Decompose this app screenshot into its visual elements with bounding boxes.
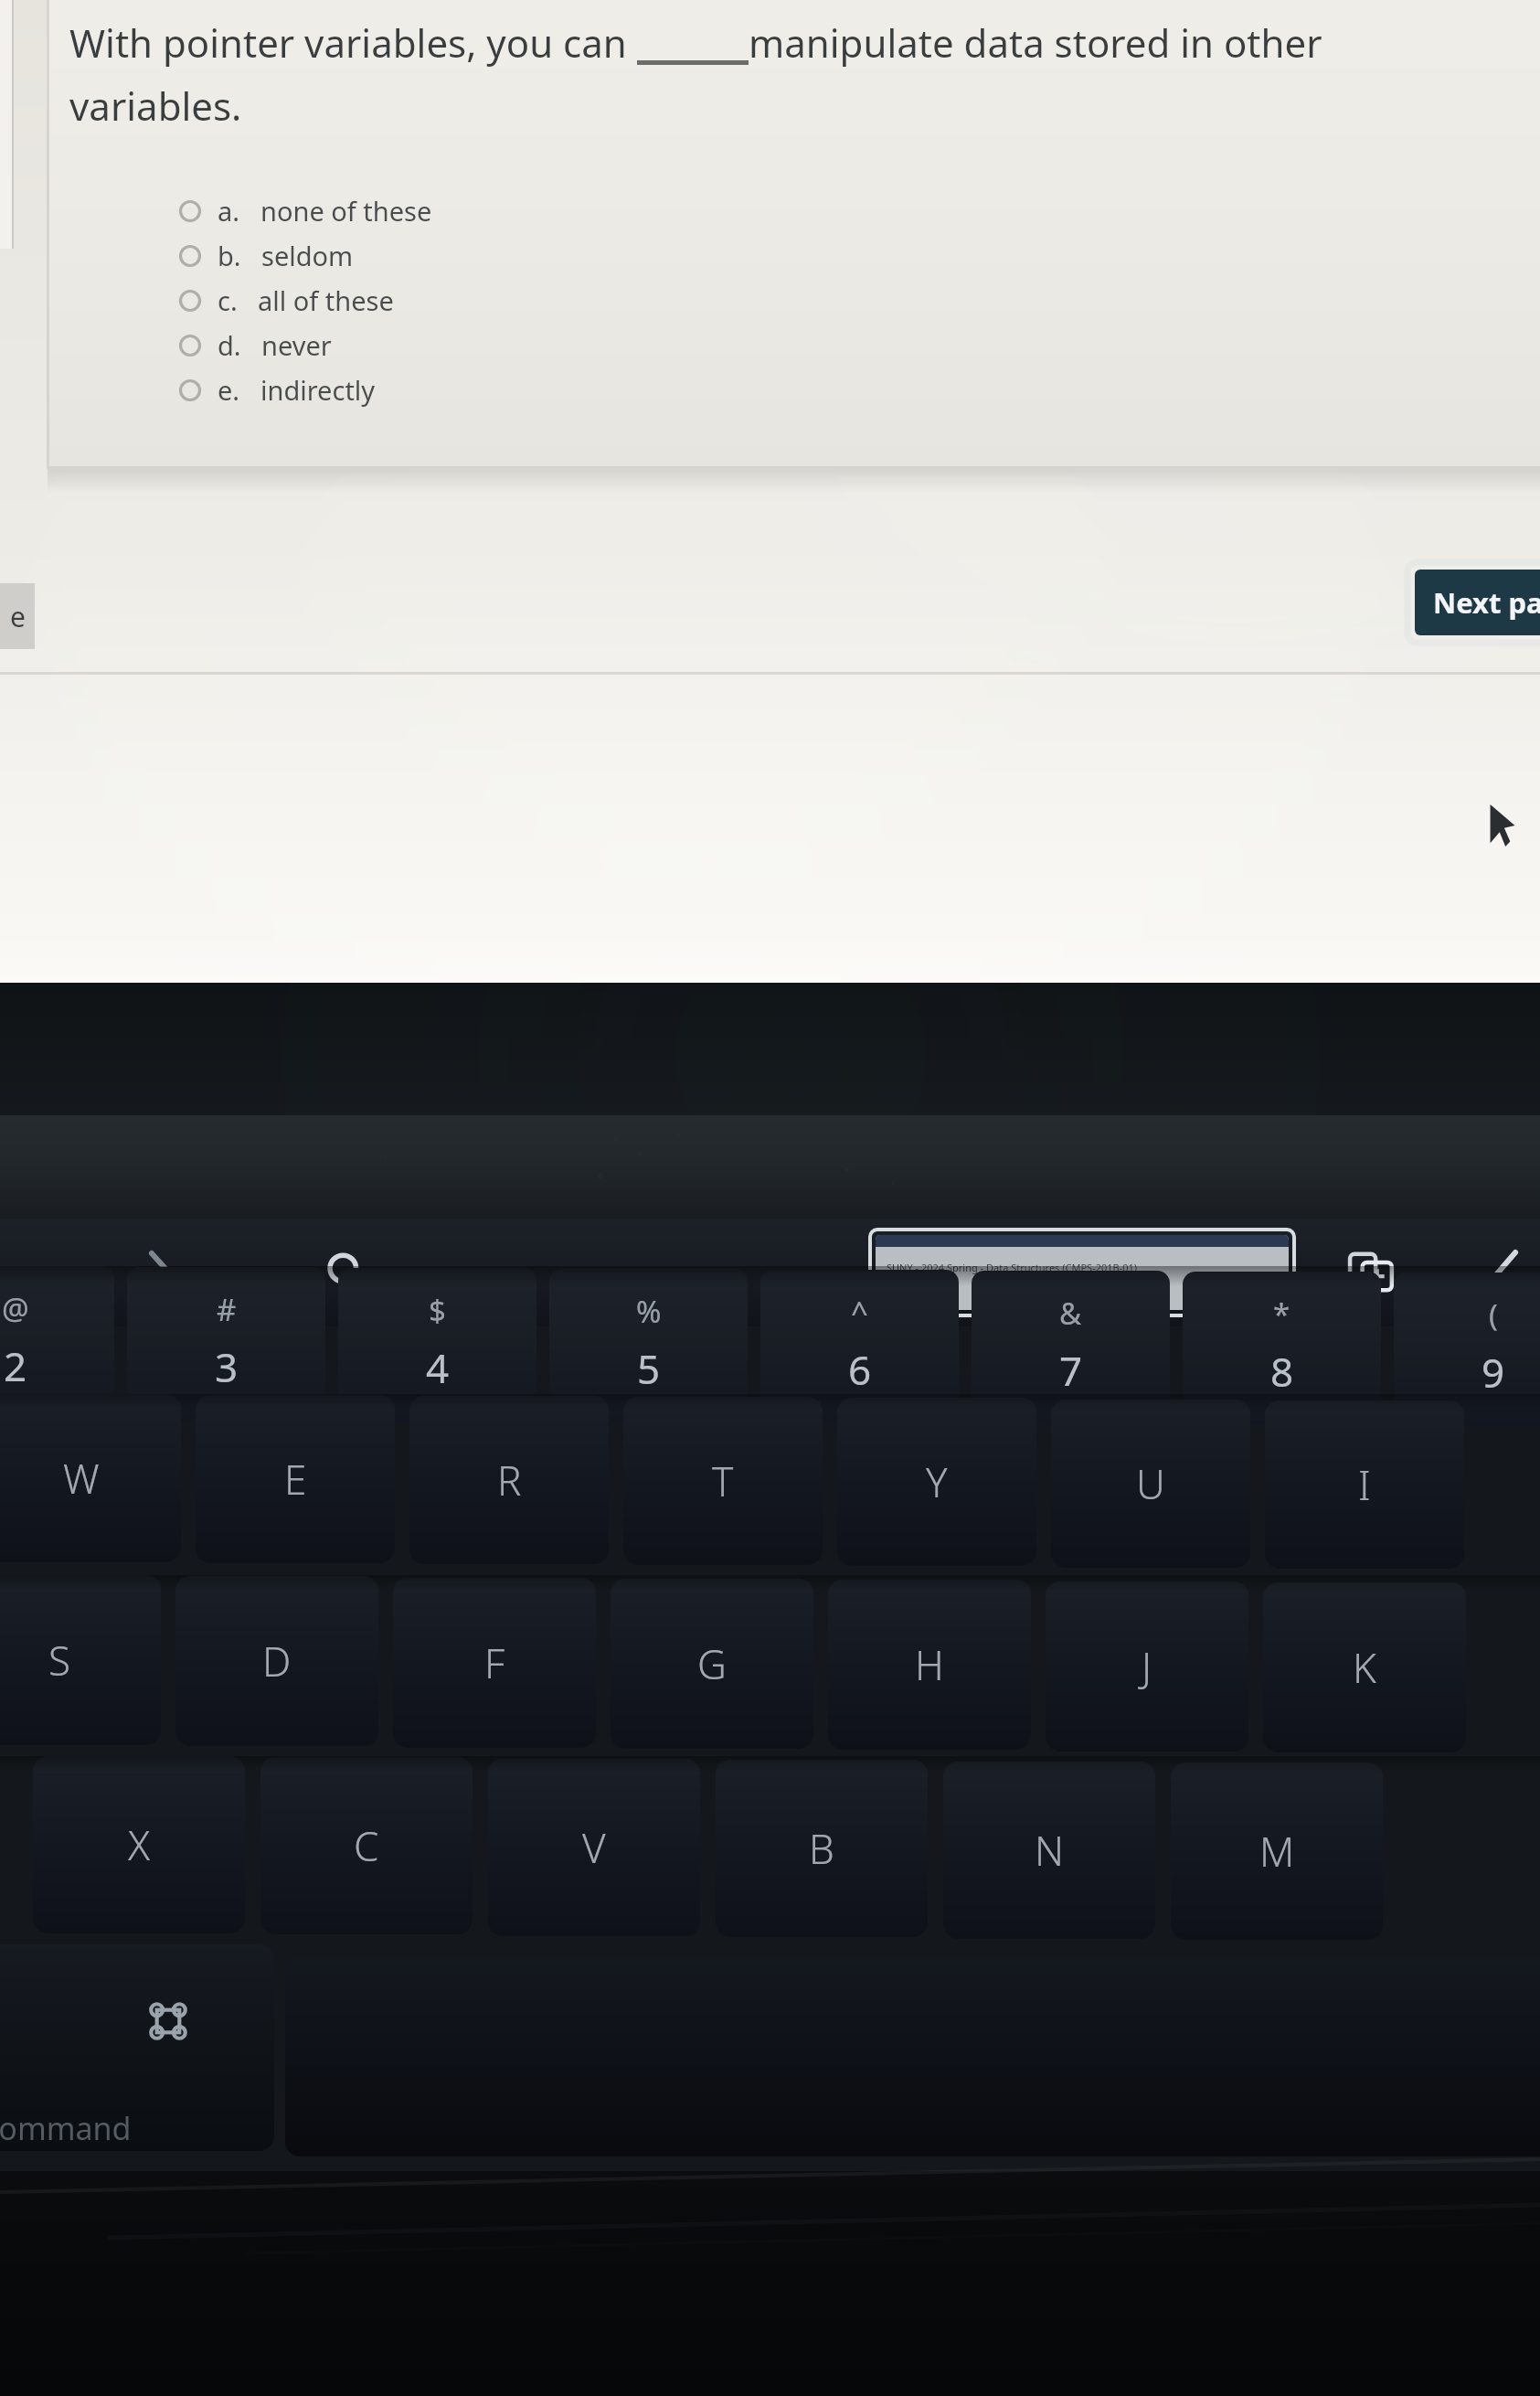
button[interactable]: a. [69,188,1540,233]
staticText: N [1035,1823,1065,1878]
staticText: F [484,1635,505,1690]
staticText: V [582,1820,606,1875]
staticText: * [1273,1294,1290,1335]
staticText: E [284,1452,307,1507]
staticText: H [915,1637,944,1692]
button[interactable]: * [1183,1272,1381,1425]
button[interactable]: D [175,1576,378,1746]
button[interactable]: E [196,1395,395,1563]
staticText: J [1142,1639,1152,1694]
button[interactable]: M [1171,1762,1383,1940]
button[interactable]: SUNY - 2024 Spring - Data Structures (CM… [876,1235,1289,1310]
button[interactable]: N [943,1762,1155,1939]
button[interactable]: J [1046,1581,1248,1752]
staticText: SUNY - 2024 Spring - Data Structures (CM… [887,1261,1138,1274]
button[interactable]: Command key [0,1944,274,2151]
button[interactable]: $ [338,1268,536,1422]
staticText: R [497,1453,522,1507]
staticText: T [712,1454,734,1508]
button[interactable]: Next pag [1415,570,1540,635]
staticText: a. [218,193,240,229]
button[interactable]: C [260,1757,473,1934]
staticText: seldom [261,238,354,273]
staticText: K [1353,1640,1376,1695]
button[interactable]: c. [69,278,1540,323]
button[interactable]: T [623,1397,823,1565]
staticText: I [1358,1457,1371,1512]
staticText: 3 [215,1339,239,1394]
staticText: e [10,598,26,635]
staticText: % [636,1291,662,1332]
button[interactable]: X [33,1756,245,1933]
staticText: B [809,1821,834,1876]
staticText: Next pag [1433,583,1540,622]
button[interactable]: U [1051,1400,1250,1568]
staticText: S [48,1633,71,1688]
button[interactable]: Search [311,1239,382,1306]
staticText: 8 [1270,1344,1294,1399]
staticText: 5 [637,1341,661,1396]
staticText: W [63,1451,100,1506]
staticText: # [217,1289,237,1330]
button[interactable]: R [409,1396,609,1564]
staticText: X [128,1817,151,1872]
staticText: c. [218,282,238,318]
button[interactable]: New window [1333,1237,1411,1308]
staticText: U [1136,1456,1165,1511]
staticText: never [261,327,332,363]
button[interactable]: d. [69,323,1540,367]
button[interactable]: G [611,1579,813,1749]
button[interactable]: e [0,583,35,649]
button[interactable]: S [0,1575,161,1745]
staticText: ( [1489,1294,1498,1336]
staticText: $ [429,1290,446,1331]
button[interactable]: e. [69,367,1540,412]
staticText: 2 [4,1338,27,1393]
button[interactable]: Forward [128,1242,192,1303]
staticText: variables. [69,80,242,132]
staticText: Y [926,1454,948,1509]
staticText: & [1059,1293,1082,1334]
button[interactable]: B [716,1760,928,1937]
staticText: none of these [260,193,432,229]
button[interactable]: Y [837,1398,1036,1566]
staticText: G [697,1636,727,1691]
staticText: @ [2,1288,29,1329]
staticText: C [354,1818,379,1873]
staticText: manipulate data stored in other [749,16,1322,69]
staticText: 7 [1059,1343,1083,1398]
button[interactable]: F [393,1578,596,1748]
button[interactable]: V [488,1759,700,1936]
staticText: all of these [258,282,394,318]
staticText: 4 [426,1340,450,1395]
staticText: e. [218,372,240,408]
staticText: With pointer variables, you can [69,16,637,69]
button[interactable]: H [828,1580,1031,1750]
button[interactable]: ( [1394,1273,1540,1426]
staticText: b. [218,238,241,273]
staticText: d. [218,327,241,363]
button[interactable]: K [1263,1582,1466,1752]
button[interactable]: ^ [760,1270,959,1423]
staticText: command [0,2107,132,2149]
staticText: M [1259,1824,1295,1879]
staticText: 6 [848,1342,872,1397]
button[interactable]: I [1265,1400,1464,1569]
button[interactable]: W [0,1394,181,1562]
button[interactable]: Back [1495,1241,1540,1304]
staticText: 9 [1482,1345,1505,1400]
button[interactable]: % [549,1269,748,1422]
staticText: ^ [851,1292,868,1333]
staticText: indirectly [260,372,376,408]
button[interactable]: # [127,1267,325,1421]
button[interactable]: b. [69,233,1540,278]
staticText: D [262,1634,292,1688]
button[interactable]: Space bar [285,1957,1540,2156]
button[interactable]: & [972,1271,1170,1424]
button[interactable]: @ [0,1266,114,1420]
